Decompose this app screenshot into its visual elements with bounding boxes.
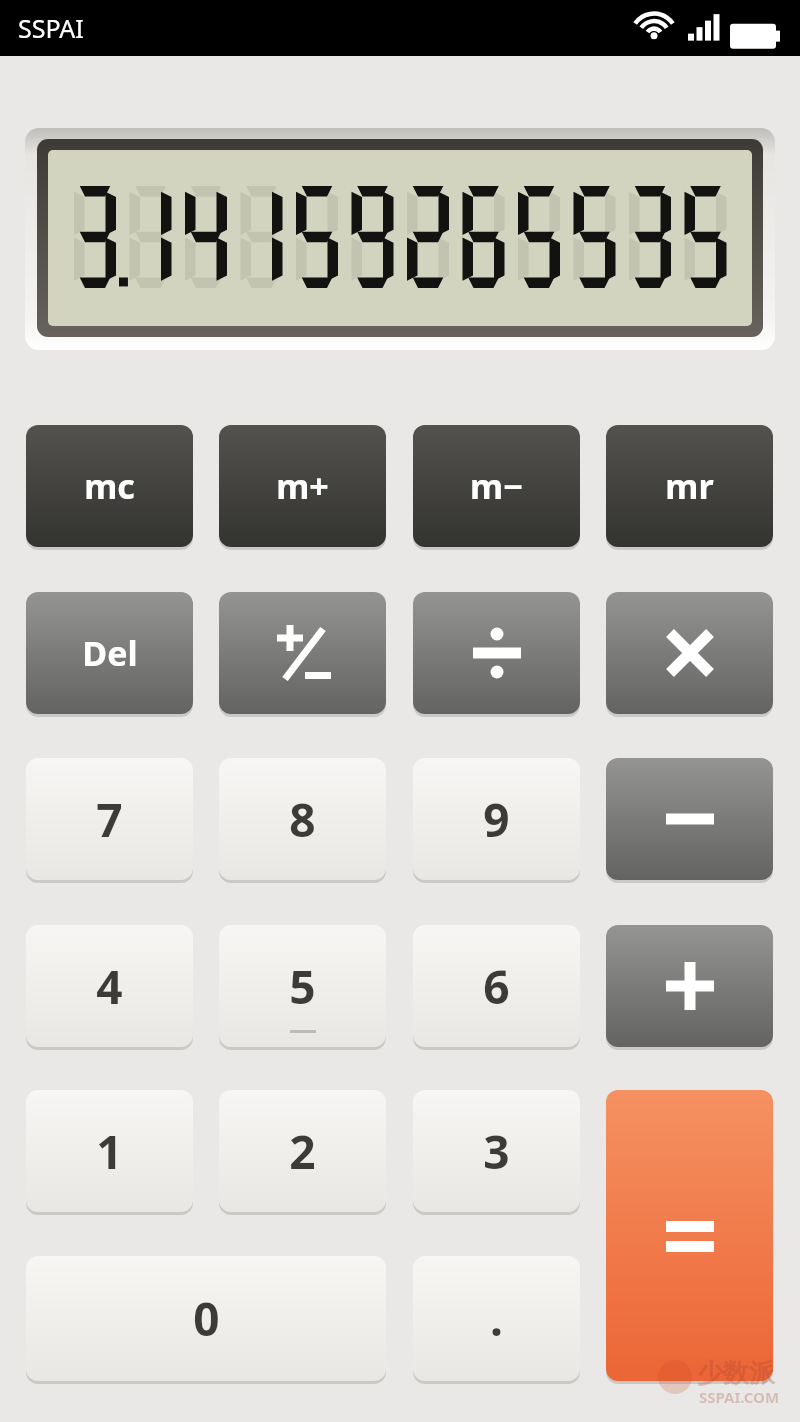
staticText: 0 [193, 1287, 220, 1350]
staticText: 2 [289, 1120, 316, 1183]
button[interactable]: 7 [26, 758, 193, 880]
button[interactable]: 4 [26, 925, 193, 1047]
button[interactable]: 1 [26, 1090, 193, 1212]
button[interactable]: 3 [413, 1090, 580, 1212]
button[interactable]: Divide [413, 592, 580, 714]
staticText: mc [84, 463, 135, 509]
staticText: m+ [276, 463, 329, 509]
button[interactable]: mr [606, 425, 773, 547]
staticText: 9 [483, 788, 510, 851]
staticText: mr [665, 463, 714, 509]
staticText: m− [470, 463, 523, 509]
button[interactable]: Equals [606, 1090, 773, 1381]
button[interactable]: . [413, 1256, 580, 1381]
button[interactable]: 5 [219, 925, 386, 1047]
staticText: 6 [483, 955, 510, 1018]
button[interactable]: Plus [606, 925, 773, 1047]
staticText: 1 [96, 1120, 123, 1183]
staticText: SSPAI.COM [699, 1387, 780, 1407]
button[interactable]: m− [413, 425, 580, 547]
button[interactable]: 2 [219, 1090, 386, 1212]
staticText: 8 [289, 788, 316, 851]
button[interactable]: Del [26, 592, 193, 714]
staticText: 7 [96, 788, 123, 851]
button[interactable]: Minus [606, 758, 773, 880]
staticText: 4 [96, 955, 123, 1018]
button[interactable]: 8 [219, 758, 386, 880]
staticText: 少数派 [697, 1357, 775, 1390]
button[interactable]: Plus minus [219, 592, 386, 714]
button[interactable]: 9 [413, 758, 580, 880]
button[interactable]: Multiply [606, 592, 773, 714]
button[interactable]: mc [26, 425, 193, 547]
button[interactable]: 0 [26, 1256, 386, 1381]
staticText: 3 [483, 1120, 510, 1183]
staticText: SSPAI [18, 11, 84, 45]
staticText: . [490, 1287, 503, 1350]
staticText: Del [82, 630, 138, 676]
staticText: 5 [289, 955, 316, 1018]
button[interactable]: m+ [219, 425, 386, 547]
button[interactable]: 6 [413, 925, 580, 1047]
